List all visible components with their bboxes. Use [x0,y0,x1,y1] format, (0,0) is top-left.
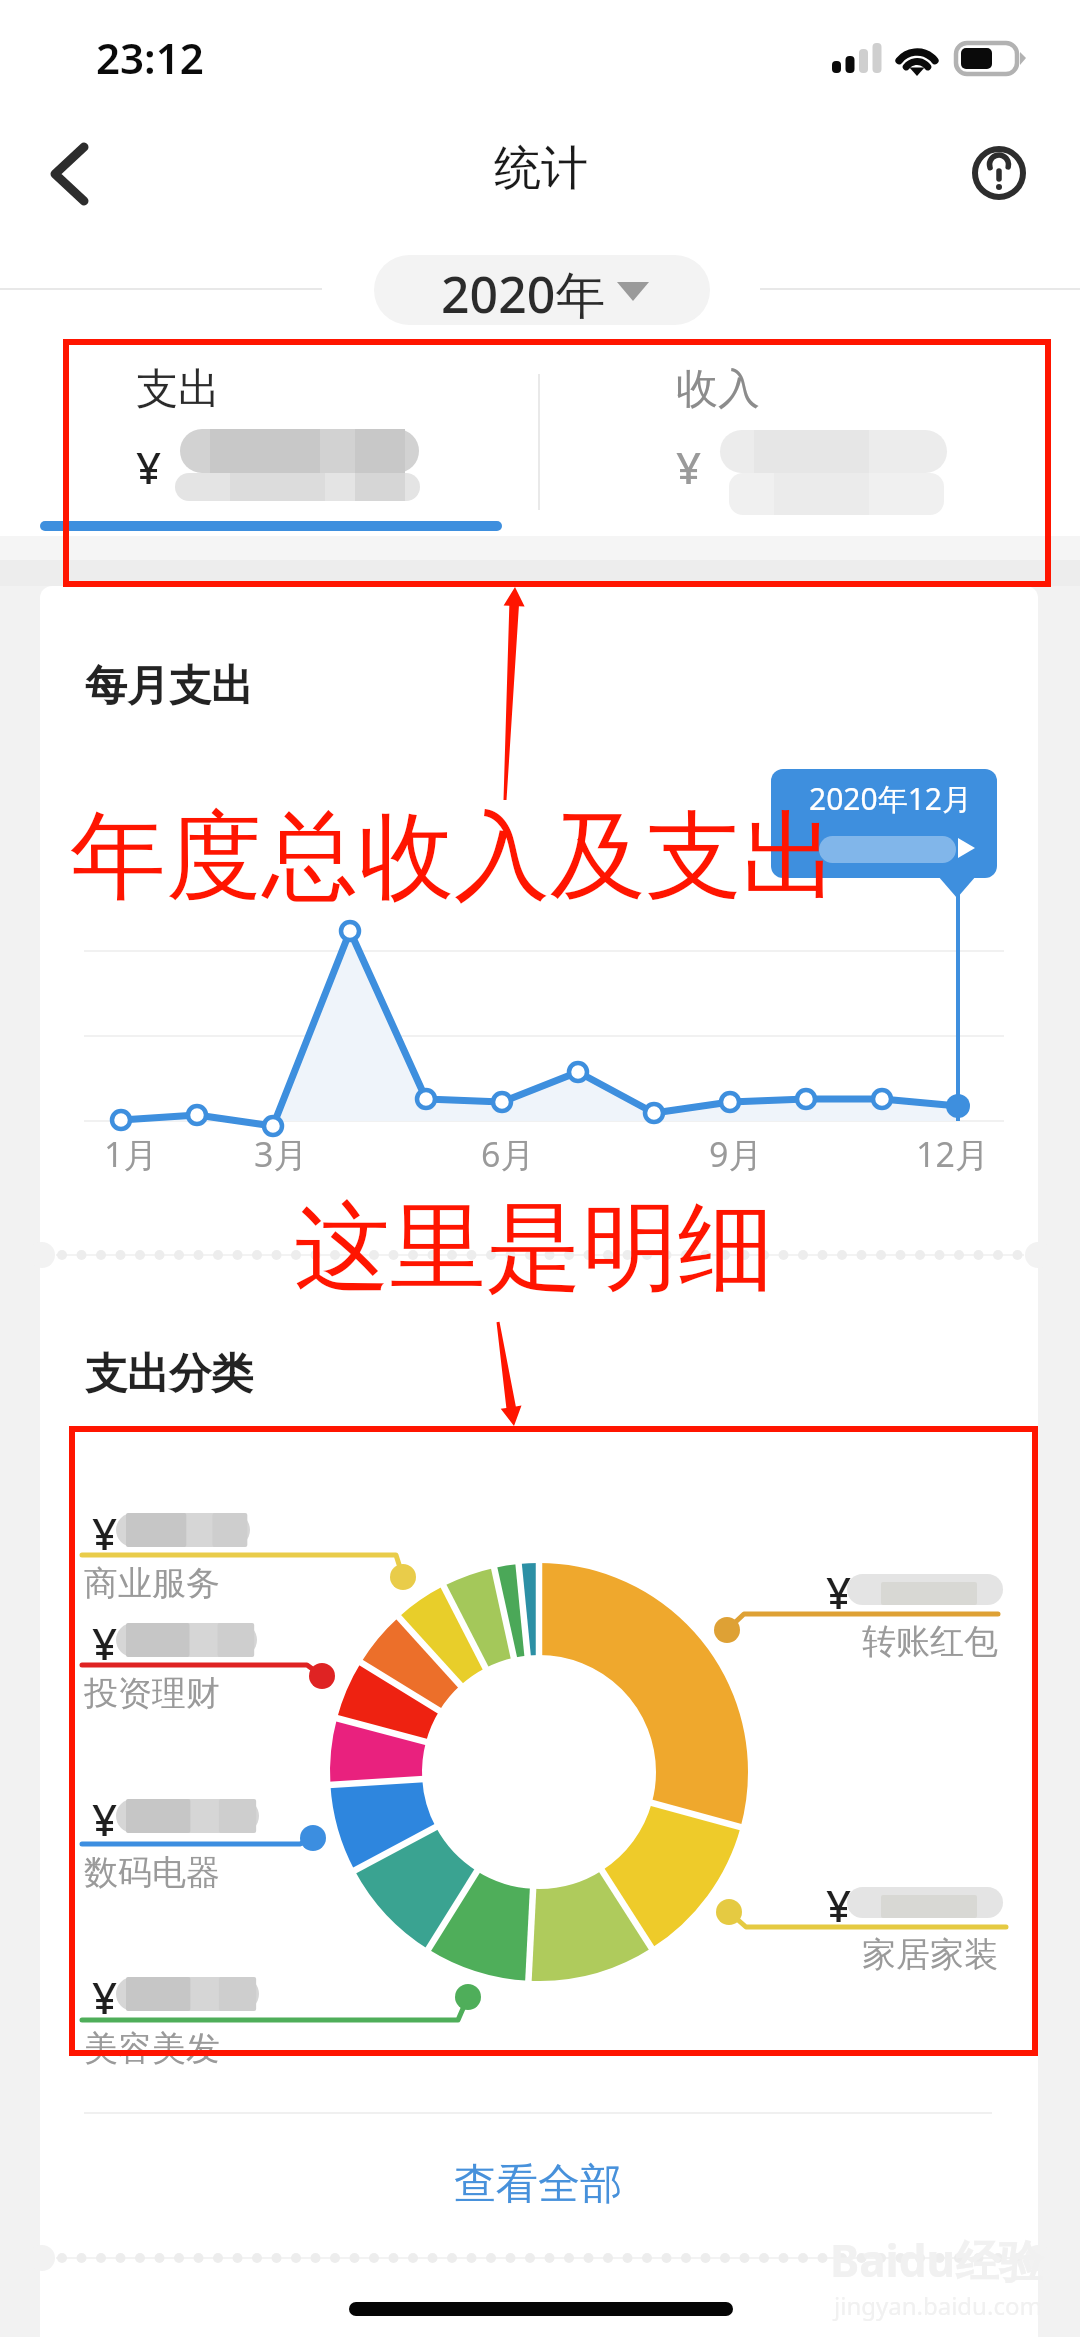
staticText: ¥ [92,1967,118,2027]
staticText: jingyan.baidu.com [834,2289,1042,2322]
button[interactable]: Help [953,127,1045,219]
staticText: 投资理财 [84,1672,220,1715]
staticText: ¥ [92,1789,118,1849]
staticText: ¥ [92,1503,118,1563]
staticText: 2020年12月 [809,778,972,819]
staticText: 美容美发 [84,2027,220,2070]
staticText: 23:12 [96,29,204,86]
staticText: ¥ [826,1562,852,1622]
staticText: ¥ [676,437,702,497]
staticText: 9月 [709,1131,763,1177]
staticText: 3月 [254,1131,308,1177]
button[interactable]: Back [26,127,118,219]
staticText: ¥ [92,1613,118,1673]
staticText: 统计 [494,139,588,198]
staticText: 支出分类 [85,1348,253,1401]
staticText: 转账红包 [862,1620,998,1663]
staticText: Baidu经验 [830,2230,1044,2290]
staticText: 收入 [676,363,760,416]
button[interactable]: 收入 [540,355,1080,530]
staticText: ¥ [136,437,162,497]
staticText: ¥ [826,1875,852,1935]
staticText: 1月 [104,1131,158,1177]
button[interactable]: 2020年 [374,255,710,325]
staticText: 这里是明细 [294,1188,774,1309]
button[interactable]: 支出 [0,355,540,530]
staticText: 支出 [136,363,220,416]
staticText: 6月 [481,1131,535,1177]
staticText: 查看全部 [38,2158,1038,2211]
button[interactable]: 查看全部 [38,2130,1038,2230]
staticText: 数码电器 [84,1851,220,1894]
button[interactable]: 2020年12月 [771,769,997,878]
staticText: 商业服务 [84,1562,220,1605]
staticText: 每月支出 [85,660,253,713]
staticText: 2020年 [441,260,606,325]
staticText: 12月 [916,1131,989,1177]
staticText: 家居家装 [862,1933,998,1976]
staticText: 年度总收入及支出 [70,797,838,918]
